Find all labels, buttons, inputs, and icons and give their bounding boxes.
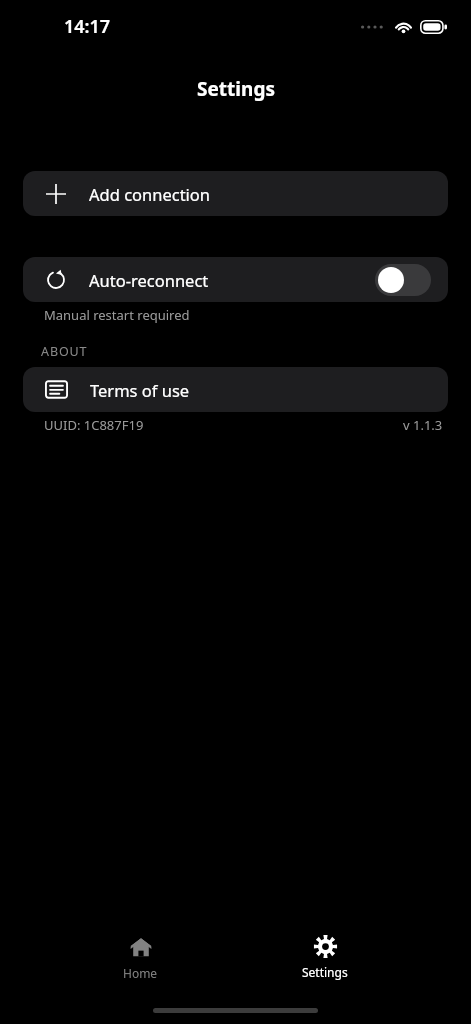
button[interactable]: Terms of use [23, 367, 448, 412]
staticText: Terms of use [90, 379, 190, 401]
staticText: Settings [197, 76, 275, 102]
staticText: ABOUT [41, 343, 88, 360]
button[interactable]: Auto-reconnect toggle [375, 264, 431, 296]
staticText: Settings [302, 964, 348, 980]
staticText: Manual restart required [44, 306, 190, 324]
button[interactable]: Add connection [23, 171, 448, 216]
staticText: v 1.1.3 [403, 416, 443, 434]
staticText: 14:17 [64, 14, 111, 39]
staticText: UUID: 1C887F19 [44, 416, 144, 434]
button[interactable]: Home [101, 930, 180, 985]
button[interactable]: Auto-reconnect [23, 257, 448, 302]
staticText: Auto-reconnect [89, 269, 209, 291]
staticText: Add connection [89, 183, 211, 205]
button[interactable]: Settings [280, 930, 370, 984]
staticText: Home [123, 965, 158, 981]
